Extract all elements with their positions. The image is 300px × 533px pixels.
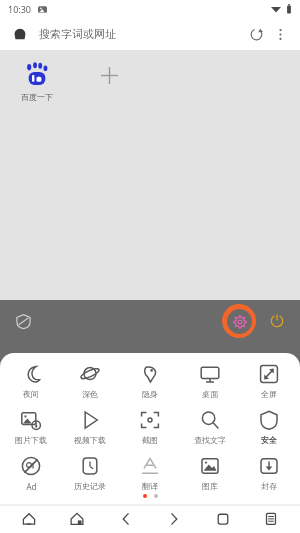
- button[interactable]: Add shortcut: [80, 62, 138, 88]
- staticText: 视频下载: [74, 435, 106, 445]
- button[interactable]: Home: [9, 23, 31, 45]
- button[interactable]: 图库: [181, 454, 239, 493]
- button[interactable]: 搜索字词或网址: [39, 18, 243, 50]
- button[interactable]: Home: [9, 506, 49, 532]
- button[interactable]: Shield: [10, 308, 36, 334]
- button[interactable]: Reload: [243, 21, 269, 47]
- staticText: 桌面: [202, 389, 218, 399]
- button[interactable]: 视频下载: [61, 408, 119, 447]
- staticText: 全屏: [261, 389, 277, 399]
- button[interactable]: 隐身: [121, 362, 179, 401]
- button[interactable]: Forward: [154, 506, 194, 532]
- button[interactable]: 百度一下: [8, 62, 66, 102]
- button[interactable]: Ad: [2, 454, 60, 494]
- staticText: 10:30: [8, 3, 32, 15]
- button[interactable]: Bookmarks: [57, 506, 97, 532]
- button[interactable]: Tabs: [203, 506, 243, 532]
- button[interactable]: More options: [269, 23, 291, 45]
- staticText: 安全: [261, 435, 277, 445]
- button[interactable]: 历史记录: [61, 454, 119, 493]
- button[interactable]: Exit: [264, 308, 290, 334]
- staticText: 封存: [261, 481, 277, 491]
- staticText: 搜索字词或网址: [39, 27, 116, 41]
- button[interactable]: 深色: [61, 362, 119, 401]
- staticText: 历史记录: [74, 481, 106, 491]
- button[interactable]: 安全: [240, 408, 298, 447]
- button[interactable]: 全屏: [240, 362, 298, 401]
- staticText: 百度一下: [21, 92, 53, 102]
- staticText: 图库: [202, 481, 218, 491]
- button[interactable]: 截图: [121, 408, 179, 447]
- staticText: 深色: [82, 389, 98, 399]
- staticText: 隐身: [142, 389, 158, 399]
- staticText: 查找文字: [194, 435, 226, 445]
- staticText: 夜间: [23, 389, 39, 399]
- button[interactable]: 夜间: [2, 362, 60, 401]
- staticText: 截图: [142, 435, 158, 445]
- staticText: 图片下载: [15, 435, 47, 445]
- staticText: Ad: [26, 481, 37, 492]
- button[interactable]: 翻译: [121, 454, 179, 493]
- button[interactable]: 图片下载: [2, 408, 60, 447]
- button[interactable]: Menu: [251, 506, 291, 532]
- staticText: 翻译: [142, 481, 158, 491]
- button[interactable]: 桌面: [181, 362, 239, 401]
- button[interactable]: 查找文字: [181, 408, 239, 447]
- button[interactable]: Back: [106, 506, 146, 532]
- button[interactable]: 封存: [240, 454, 298, 493]
- button[interactable]: Settings: [222, 304, 256, 338]
